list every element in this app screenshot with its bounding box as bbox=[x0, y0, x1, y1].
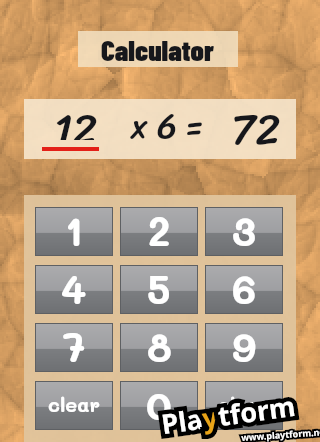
button[interactable]: 7 bbox=[36, 324, 112, 371]
staticText: 0 bbox=[146, 378, 172, 425]
button[interactable]: 12 bbox=[38, 92, 113, 140]
staticText: 8 bbox=[147, 320, 172, 367]
staticText: Calculator bbox=[101, 32, 215, 67]
staticText: 3 bbox=[232, 204, 256, 251]
staticText: tform bbox=[215, 387, 298, 434]
button[interactable]: 1 bbox=[36, 208, 112, 255]
staticText: 4 bbox=[61, 262, 87, 309]
staticText: 1 bbox=[65, 204, 83, 251]
staticText: tform bbox=[215, 387, 298, 434]
staticText: www.playtform.net bbox=[241, 425, 320, 442]
button[interactable]: clear bbox=[206, 382, 282, 429]
button[interactable]: 8 bbox=[121, 324, 197, 371]
staticText: 6 bbox=[232, 262, 257, 309]
button[interactable]: 0 bbox=[121, 382, 197, 429]
staticText: 2 bbox=[148, 204, 171, 251]
button[interactable]: 6 bbox=[206, 266, 282, 313]
button[interactable]: 4 bbox=[36, 266, 112, 313]
button[interactable]: clear bbox=[36, 382, 112, 429]
button[interactable]: 9 bbox=[206, 324, 282, 371]
staticText: x 6 = bbox=[130, 95, 204, 153]
staticText: 12 bbox=[54, 92, 98, 140]
staticText: Pla bbox=[159, 400, 205, 442]
staticText: 7 bbox=[63, 320, 86, 367]
button[interactable]: 2 bbox=[121, 208, 197, 255]
staticText: clear bbox=[218, 391, 270, 417]
staticText: Pla bbox=[159, 400, 205, 442]
staticText: y bbox=[200, 398, 221, 436]
staticText: www.playtform.net bbox=[241, 425, 320, 442]
staticText: y bbox=[200, 398, 221, 436]
button[interactable]: Calculator bbox=[78, 31, 238, 67]
button[interactable]: 5 bbox=[121, 266, 197, 313]
staticText: 9 bbox=[232, 320, 257, 367]
button[interactable]: 3 bbox=[206, 208, 282, 255]
staticText: 72 bbox=[231, 92, 281, 148]
staticText: 5 bbox=[147, 262, 171, 309]
staticText: clear bbox=[48, 391, 100, 417]
